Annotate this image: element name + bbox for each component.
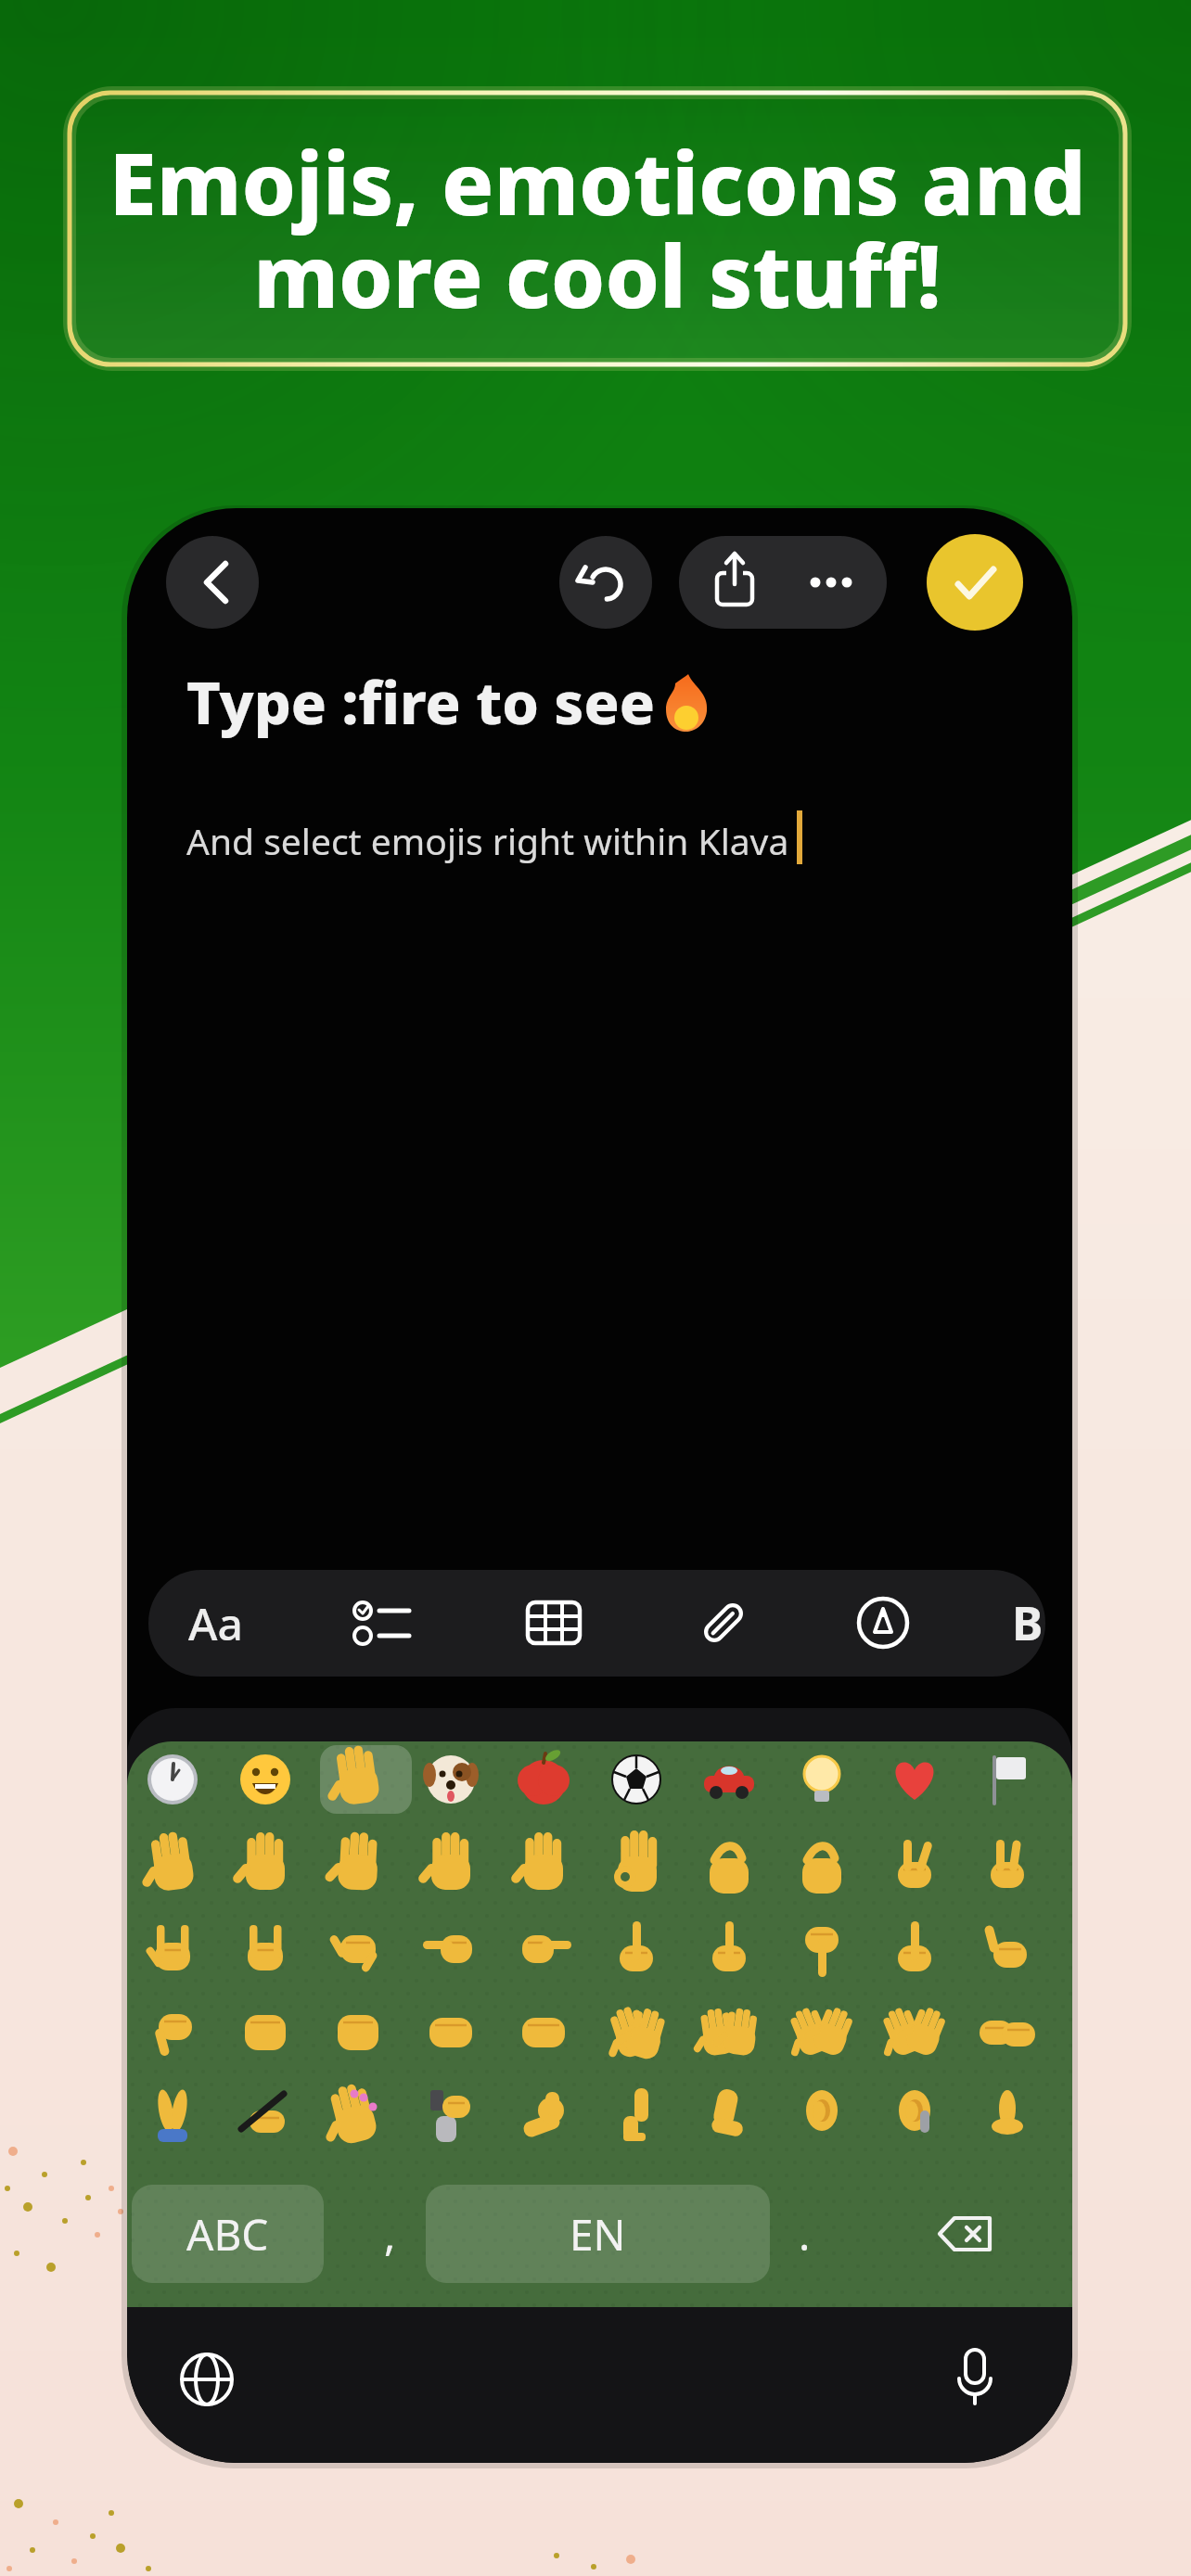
button[interactable] (967, 2075, 1047, 2153)
button[interactable] (318, 1741, 398, 1817)
button[interactable] (689, 1910, 769, 1988)
button[interactable] (133, 1910, 212, 1988)
button[interactable] (875, 1910, 954, 1988)
button[interactable] (596, 1910, 676, 1988)
staticText: ABC (186, 2205, 269, 2264)
staticText: . (799, 2205, 811, 2264)
button[interactable] (782, 2075, 862, 2153)
button[interactable] (411, 1910, 491, 1988)
button[interactable] (411, 1994, 491, 2072)
button[interactable] (504, 1827, 583, 1905)
button[interactable]: ABC (132, 2185, 324, 2283)
button[interactable] (689, 2075, 769, 2153)
button[interactable] (504, 2075, 583, 2153)
button[interactable] (689, 1827, 769, 1905)
button[interactable] (411, 1827, 491, 1905)
button[interactable] (875, 1994, 954, 2072)
button[interactable] (688, 536, 781, 629)
button[interactable] (967, 1827, 1047, 1905)
staticText: And select emojis right within Klava (186, 816, 789, 865)
button[interactable] (596, 1827, 676, 1905)
button[interactable] (928, 2331, 1021, 2424)
button[interactable] (875, 1827, 954, 1905)
button[interactable] (967, 1741, 1047, 1817)
staticText: EN (570, 2205, 626, 2264)
staticText: Type :fire to see (186, 662, 655, 742)
button[interactable] (782, 1741, 862, 1817)
button[interactable] (166, 536, 259, 629)
button[interactable] (596, 1994, 676, 2072)
button[interactable] (337, 1576, 429, 1669)
button[interactable] (318, 1994, 398, 2072)
button[interactable]: EN (426, 2185, 770, 2283)
button[interactable] (318, 1827, 398, 1905)
button[interactable] (133, 1994, 212, 2072)
button[interactable] (225, 2075, 305, 2153)
button[interactable] (689, 1994, 769, 2072)
button[interactable] (160, 2333, 253, 2426)
button[interactable] (677, 1576, 770, 1669)
button[interactable] (782, 1827, 862, 1905)
button[interactable] (782, 1910, 862, 1988)
staticText: Emojis, emoticons and more cool stuff! (109, 123, 1086, 334)
button[interactable] (596, 1741, 676, 1817)
button[interactable] (689, 1741, 769, 1817)
button[interactable] (411, 1741, 491, 1817)
staticText: , (384, 2205, 396, 2264)
button[interactable] (133, 1741, 212, 1817)
button[interactable] (225, 1994, 305, 2072)
button[interactable] (411, 2075, 491, 2153)
button[interactable] (927, 534, 1023, 631)
button[interactable] (225, 1741, 305, 1817)
button[interactable]: B (988, 1576, 1045, 1669)
button[interactable] (782, 1994, 862, 2072)
button[interactable] (318, 2075, 398, 2153)
button[interactable] (504, 1910, 583, 1988)
staticText: B (1012, 1591, 1044, 1654)
button[interactable] (967, 1994, 1047, 2072)
button[interactable] (318, 1910, 398, 1988)
button[interactable] (875, 1741, 954, 1817)
button[interactable] (559, 536, 652, 629)
button[interactable]: Aa (169, 1576, 262, 1669)
button[interactable]: , (357, 2185, 422, 2283)
button[interactable] (837, 1576, 929, 1669)
button[interactable] (967, 1910, 1047, 1988)
button[interactable] (225, 1827, 305, 1905)
button[interactable] (504, 1741, 583, 1817)
button[interactable] (875, 2075, 954, 2153)
button[interactable] (596, 2075, 676, 2153)
button[interactable] (504, 1994, 583, 2072)
button[interactable]: . (776, 2185, 832, 2283)
button[interactable] (225, 1910, 305, 1988)
button[interactable] (133, 2075, 212, 2153)
button[interactable] (912, 2185, 1019, 2283)
staticText: Aa (188, 1593, 243, 1653)
button[interactable] (785, 536, 877, 629)
button[interactable] (507, 1576, 600, 1669)
button[interactable] (133, 1827, 212, 1905)
